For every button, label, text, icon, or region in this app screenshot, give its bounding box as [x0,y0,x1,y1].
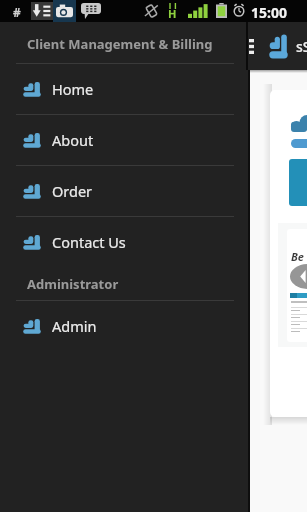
staticText: H [168,6,177,21]
staticText: About [52,130,94,150]
button[interactable]: Home [0,64,248,114]
button[interactable]: Contact Us [0,217,248,267]
staticText: Contact Us [52,232,126,252]
staticText: Home [52,79,94,99]
staticText: 15:00 [251,3,287,22]
staticText: sSoft [296,37,307,56]
staticText: Client Management & Billing [27,35,213,53]
staticText: # [13,4,21,20]
button[interactable]: Admin [0,301,248,351]
button[interactable]: About [0,115,248,165]
button[interactable]: More options [249,22,261,70]
staticText: Order [52,181,93,201]
staticText: Bea [291,249,307,279]
staticText: Admin [52,316,97,336]
button[interactable]: Order [0,166,248,216]
staticText: Administrator [27,275,119,293]
